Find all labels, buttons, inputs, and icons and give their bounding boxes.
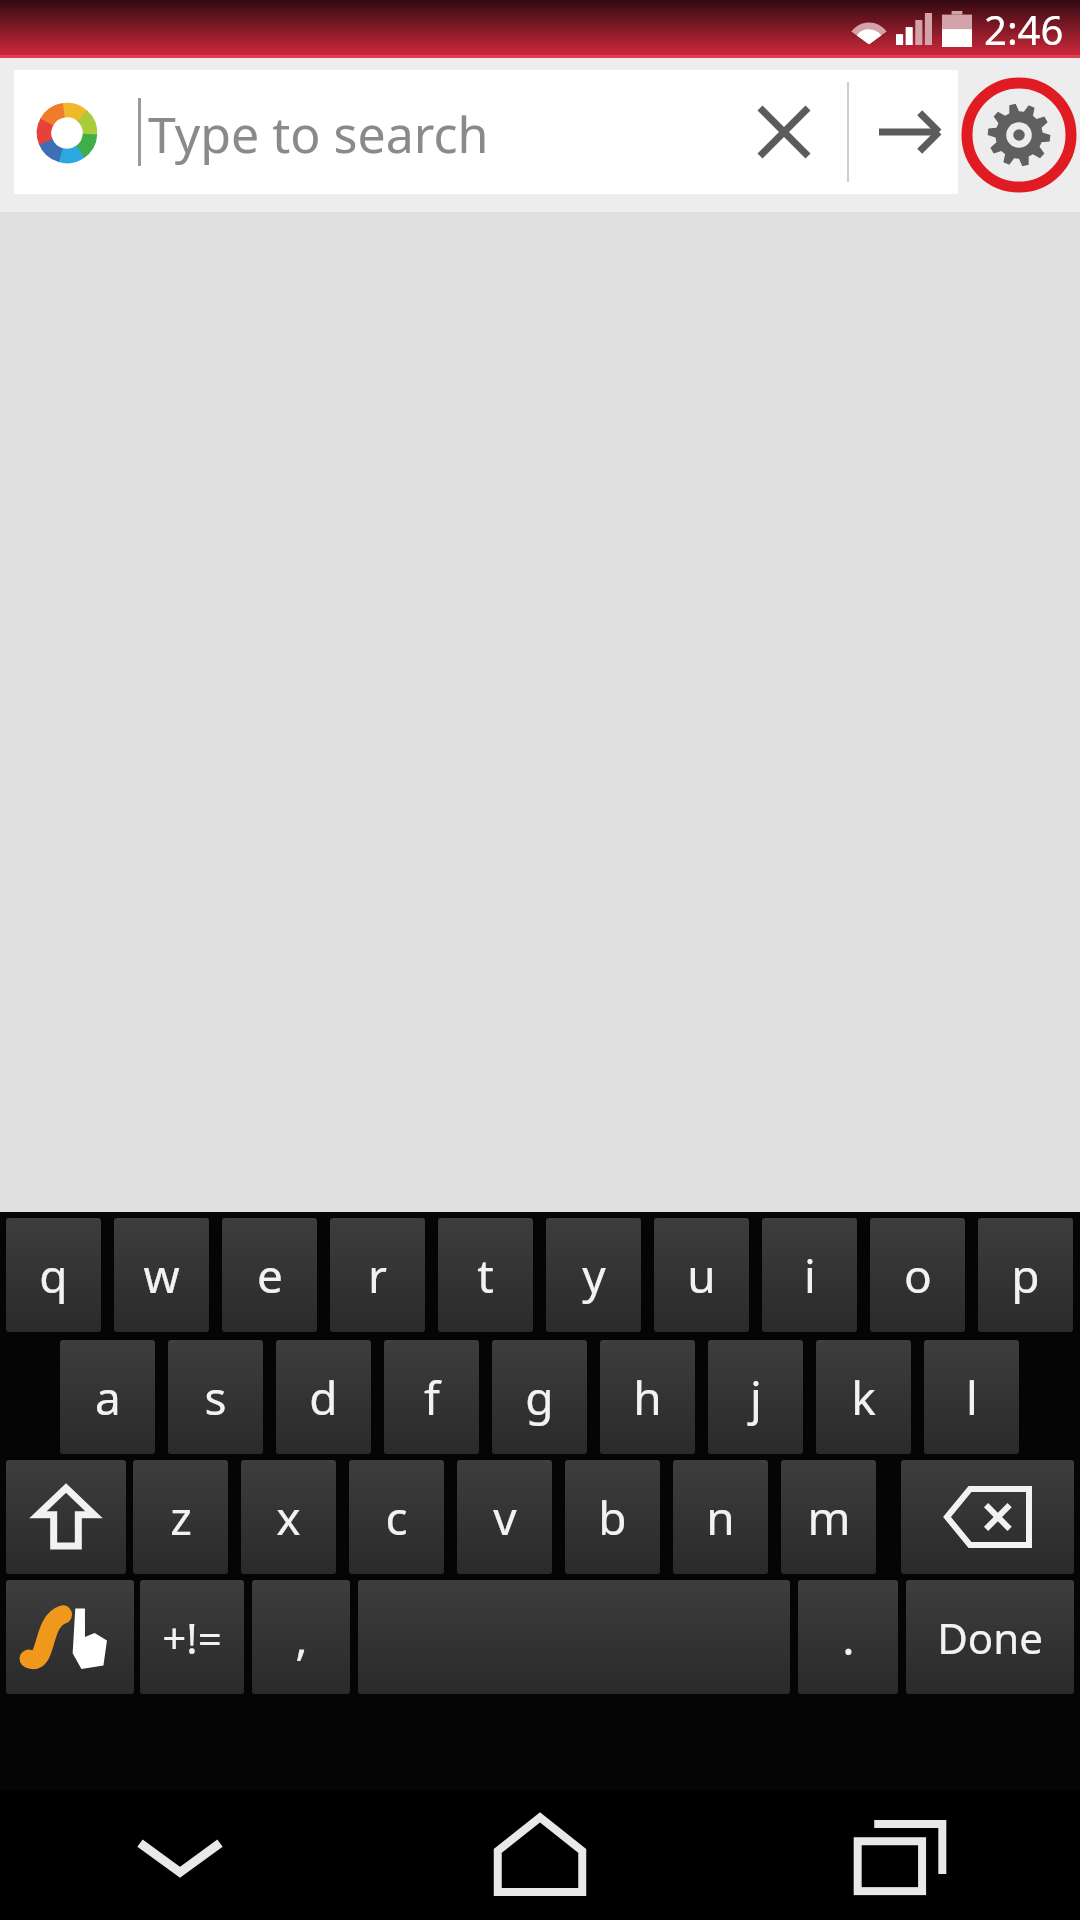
staticText: , (295, 1606, 308, 1669)
staticText: o (904, 1244, 932, 1307)
staticText: 2:46 (984, 2, 1064, 56)
button[interactable]: Type to search (14, 70, 958, 194)
staticText: x (276, 1486, 301, 1549)
button[interactable]: Shift (6, 1460, 126, 1574)
staticText: c (385, 1486, 408, 1549)
button[interactable]: f (384, 1340, 479, 1454)
button[interactable]: Clear (732, 90, 836, 174)
staticText: k (851, 1366, 876, 1429)
button[interactable]: z (133, 1460, 228, 1574)
button[interactable]: d (276, 1340, 371, 1454)
staticText: t (477, 1244, 494, 1307)
button[interactable]: n (673, 1460, 768, 1574)
button[interactable]: Settings (958, 58, 1080, 212)
button[interactable]: s (168, 1340, 263, 1454)
button[interactable]: Done (906, 1580, 1074, 1694)
staticText: +!= (162, 1609, 222, 1666)
staticText: e (257, 1244, 283, 1307)
staticText: s (204, 1366, 227, 1429)
button[interactable]: q (6, 1218, 101, 1332)
button[interactable]: Backspace (901, 1460, 1074, 1574)
button[interactable]: Space (358, 1580, 790, 1694)
button[interactable]: r (330, 1218, 425, 1332)
button[interactable]: Search (859, 90, 958, 174)
button[interactable]: t (438, 1218, 533, 1332)
button[interactable]: p (978, 1218, 1073, 1332)
staticText: g (525, 1366, 554, 1429)
staticText: l (966, 1366, 978, 1429)
button[interactable]: u (654, 1218, 749, 1332)
button[interactable]: +!= (140, 1580, 244, 1694)
button[interactable]: w (114, 1218, 209, 1332)
staticText: r (368, 1244, 387, 1307)
button[interactable]: Recent apps (720, 1790, 1080, 1920)
staticText: u (687, 1244, 716, 1307)
staticText: a (95, 1366, 121, 1429)
button[interactable]: a (60, 1340, 155, 1454)
button[interactable]: g (492, 1340, 587, 1454)
button[interactable]: e (222, 1218, 317, 1332)
staticText: i (804, 1244, 816, 1307)
button[interactable]: , (252, 1580, 350, 1694)
staticText: d (309, 1366, 338, 1429)
button[interactable]: b (565, 1460, 660, 1574)
button[interactable]: v (457, 1460, 552, 1574)
staticText: p (1011, 1244, 1040, 1307)
button[interactable]: i (762, 1218, 857, 1332)
button[interactable]: o (870, 1218, 965, 1332)
staticText: b (598, 1486, 627, 1549)
button[interactable]: c (349, 1460, 444, 1574)
button[interactable]: j (708, 1340, 803, 1454)
staticText: . (842, 1606, 855, 1669)
staticText: w (143, 1244, 180, 1307)
staticText: q (39, 1244, 68, 1307)
button[interactable]: h (600, 1340, 695, 1454)
staticText: f (424, 1366, 440, 1429)
staticText: Type to search (148, 100, 489, 168)
button[interactable]: y (546, 1218, 641, 1332)
button[interactable]: . (798, 1580, 898, 1694)
button[interactable]: Gesture typing (6, 1580, 134, 1694)
button[interactable]: l (924, 1340, 1019, 1454)
staticText: Done (937, 1609, 1043, 1666)
staticText: m (807, 1486, 851, 1549)
button[interactable]: k (816, 1340, 911, 1454)
button[interactable]: Home (360, 1790, 720, 1920)
staticText: n (706, 1486, 735, 1549)
staticText: v (493, 1486, 517, 1549)
button[interactable]: m (781, 1460, 876, 1574)
button[interactable]: Hide keyboard (0, 1790, 360, 1920)
staticText: h (633, 1366, 662, 1429)
staticText: y (582, 1244, 606, 1307)
staticText: z (170, 1486, 192, 1549)
button[interactable]: x (241, 1460, 336, 1574)
staticText: j (750, 1366, 762, 1429)
